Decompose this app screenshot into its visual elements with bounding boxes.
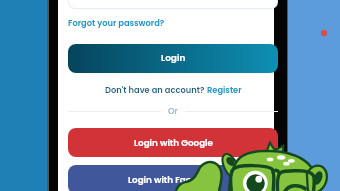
button[interactable]: Login with Facebook [68,165,278,191]
staticText: Don't have an account? [105,84,207,96]
staticText: Login with Facebook [128,174,219,186]
staticText: Or [168,105,178,117]
staticText: Login [161,52,186,65]
staticText: Forgot your password? [68,17,165,29]
button[interactable]: Register [207,84,242,96]
button[interactable]: Login with Google [68,128,278,157]
button[interactable]: Forgot your password? [68,17,165,29]
staticText: Register [207,84,242,96]
button[interactable]: Login [68,44,278,73]
staticText: Login with Google [134,137,213,149]
